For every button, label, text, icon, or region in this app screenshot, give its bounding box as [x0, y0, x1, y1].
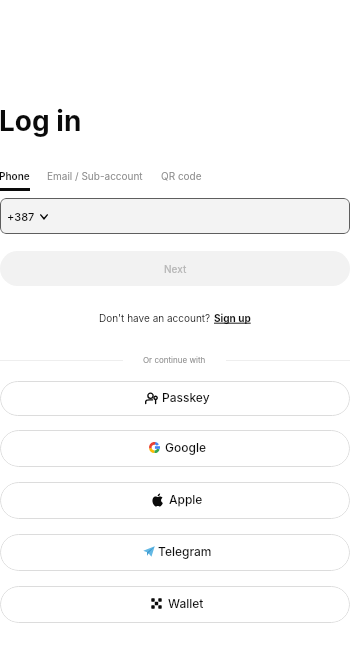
staticText: Next	[164, 263, 187, 275]
button[interactable]: Wallet	[0, 586, 350, 623]
staticText: Or continue with	[143, 355, 206, 365]
button[interactable]: Passkey	[0, 381, 350, 416]
staticText: Passkey	[162, 390, 210, 405]
staticText: Sign up	[214, 312, 251, 324]
button[interactable]: Next	[0, 251, 350, 286]
button[interactable]: +387	[0, 198, 350, 234]
staticText: Log in	[0, 104, 82, 138]
button[interactable]: Apple	[0, 482, 350, 519]
staticText: Google	[165, 440, 206, 455]
staticText: +387	[7, 210, 35, 223]
staticText: Email / Sub-account	[47, 170, 143, 182]
staticText: Don't have an account?	[99, 312, 214, 324]
staticText: QR code	[161, 170, 202, 182]
button[interactable]: QR code	[161, 170, 202, 191]
button[interactable]: Google	[0, 430, 350, 467]
staticText: Wallet	[168, 596, 204, 611]
staticText: Phone	[0, 170, 30, 182]
staticText: Telegram	[158, 544, 212, 559]
button[interactable]: Phone	[0, 170, 30, 191]
button[interactable]: Email / Sub-account	[47, 170, 143, 191]
staticText: Apple	[169, 492, 203, 507]
button[interactable]: Sign up	[214, 312, 251, 324]
button[interactable]: Telegram	[0, 534, 350, 571]
